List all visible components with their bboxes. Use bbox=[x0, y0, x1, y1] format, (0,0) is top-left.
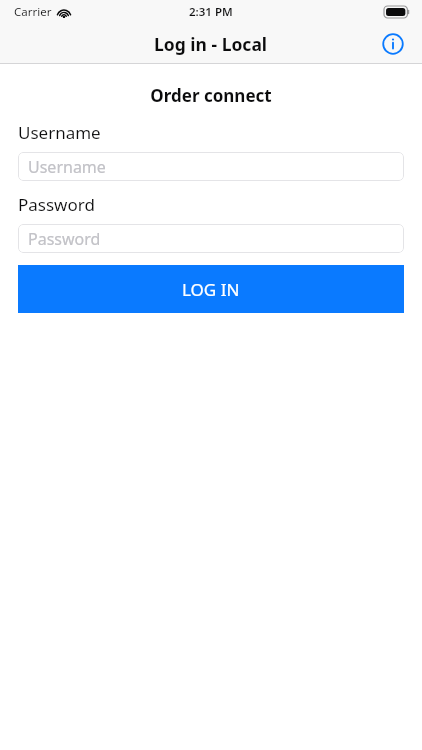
button[interactable]: Info bbox=[376, 27, 410, 61]
button[interactable]: Username bbox=[18, 152, 404, 181]
staticText: LOG IN bbox=[182, 278, 240, 301]
staticText: Password bbox=[28, 228, 101, 250]
staticText: Password bbox=[18, 193, 95, 216]
staticText: Log in - Local bbox=[154, 32, 268, 56]
button[interactable]: LOG IN bbox=[18, 265, 404, 313]
staticText: Username bbox=[18, 121, 101, 144]
staticText: 2:31 PM bbox=[189, 4, 233, 20]
staticText: Carrier bbox=[14, 4, 52, 20]
staticText: Username bbox=[28, 156, 106, 178]
button[interactable]: Password bbox=[18, 224, 404, 253]
staticText: Order connect bbox=[0, 84, 422, 107]
